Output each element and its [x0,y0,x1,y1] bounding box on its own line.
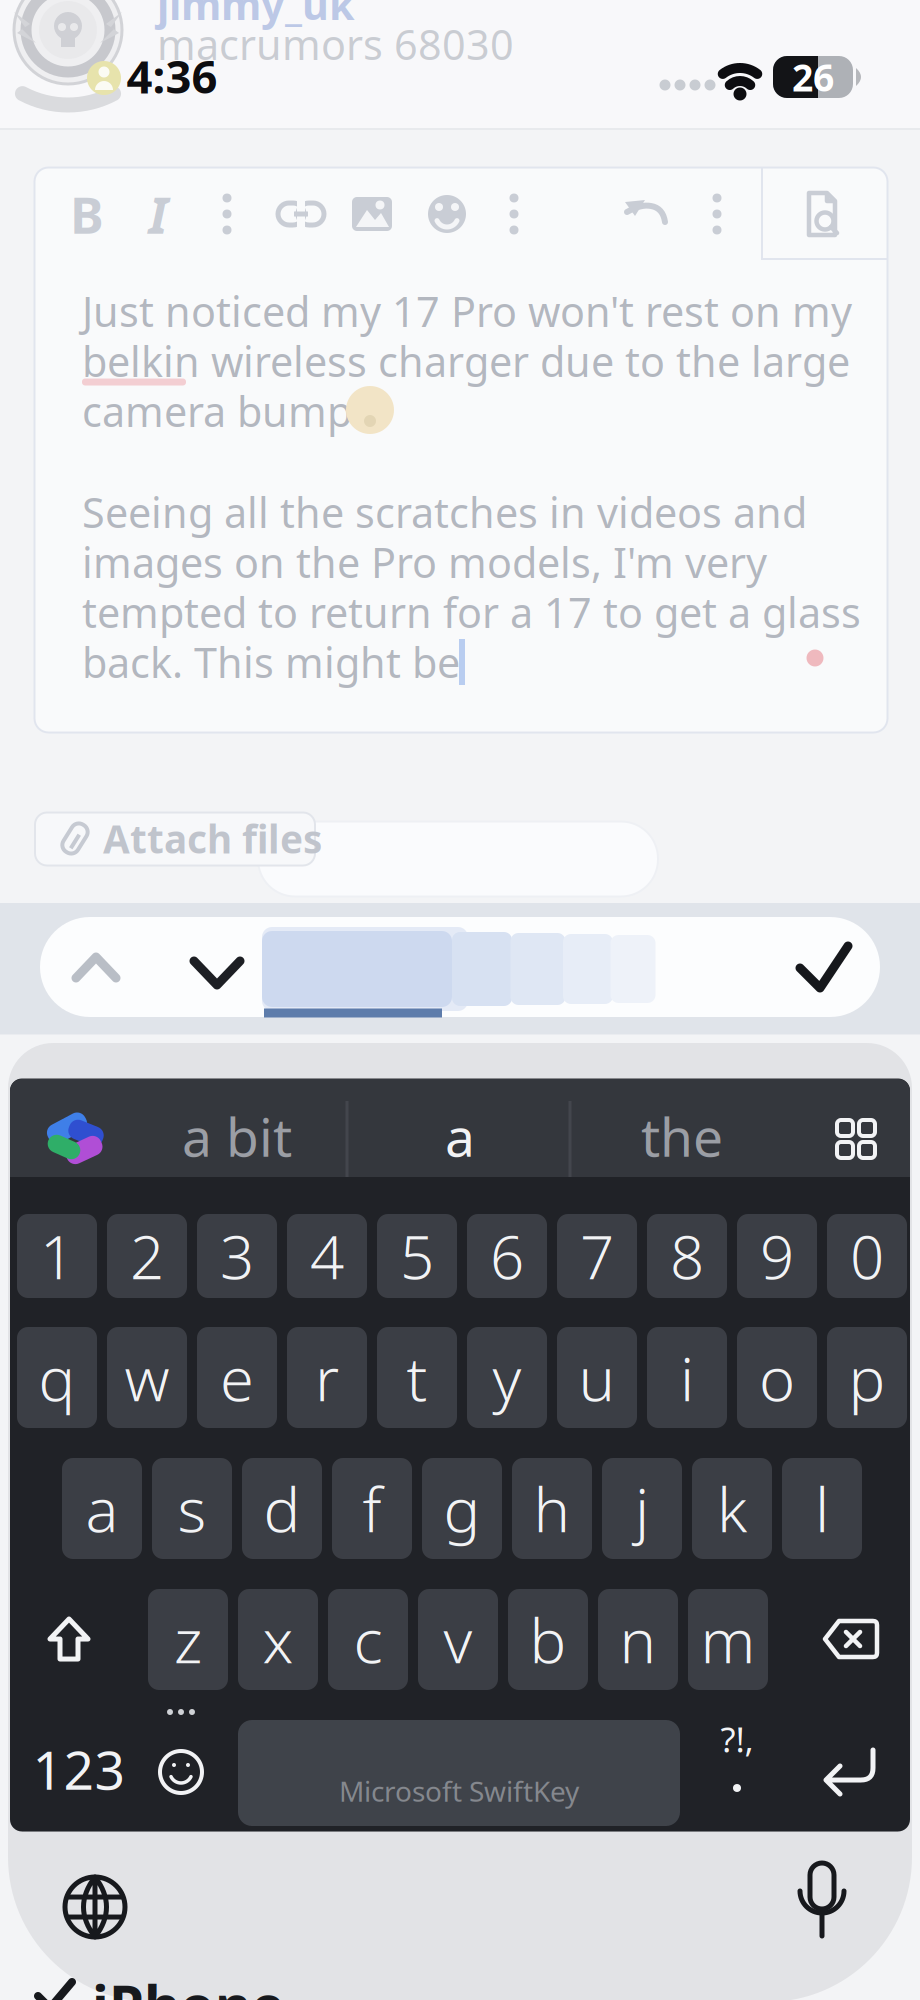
button[interactable]: 5 [377,1214,457,1298]
staticText: 4 [310,1216,344,1296]
staticText: 26 [792,52,834,102]
button[interactable]: 123 [14,1734,144,1804]
staticText: z [174,1599,202,1680]
staticText: B [70,180,104,248]
button[interactable]: More options [488,188,540,240]
button[interactable]: I [132,188,184,240]
button[interactable]: a [62,1458,142,1559]
staticText: r [315,1337,339,1418]
button[interactable]: n [598,1589,678,1690]
button[interactable]: Preview [794,186,850,242]
button[interactable]: e [197,1327,277,1428]
staticText: m [700,1599,755,1680]
button[interactable]: jimmy_uk [157,0,357,25]
staticText: a bit [182,1101,292,1171]
button[interactable]: c [328,1589,408,1690]
button[interactable]: Next keyboard [63,1875,127,1939]
staticText: t [406,1337,427,1418]
button[interactable]: Copilot [45,1109,105,1169]
button[interactable]: Previous field [73,954,119,982]
button[interactable]: Delete [823,1619,879,1659]
button[interactable]: v [418,1589,498,1690]
staticText: 9 [760,1216,794,1296]
staticText: n [619,1599,656,1680]
staticText: w [124,1337,169,1418]
button[interactable]: Undo [623,188,675,240]
button[interactable]: p [827,1327,907,1428]
staticText: e [220,1337,254,1418]
button[interactable]: 1 [17,1214,97,1298]
button[interactable]: B [61,188,113,240]
button[interactable]: Insert emoji [421,188,473,240]
button[interactable]: Space [238,1720,680,1826]
button[interactable]: iPhone keyboard [32,1962,312,2000]
button[interactable]: h [512,1458,592,1559]
staticText: u [578,1337,615,1418]
staticText: jimmy_uk [157,0,355,31]
button[interactable]: f [332,1458,412,1559]
button[interactable]: 7 [557,1214,637,1298]
button[interactable]: t [377,1327,457,1428]
button[interactable]: Attach files [35,812,315,865]
button[interactable]: i [647,1327,727,1428]
button[interactable]: o [737,1327,817,1428]
button[interactable]: x [238,1589,318,1690]
button[interactable]: Punctuation [712,1725,762,1801]
button[interactable]: 8 [647,1214,727,1298]
button[interactable]: 2 [107,1214,187,1298]
staticText: v [443,1599,472,1680]
staticText: b [529,1599,566,1680]
staticText: d [263,1468,300,1549]
button[interactable]: 0 [827,1214,907,1298]
button[interactable]: Emoji [151,1706,211,1802]
button[interactable]: j [602,1458,682,1559]
button[interactable]: u [557,1327,637,1428]
staticText: 123 [32,1734,125,1804]
staticText: 0 [850,1216,884,1296]
button[interactable]: Insert link [275,188,327,240]
staticText: l [815,1468,829,1549]
button[interactable]: Next field [191,957,243,989]
staticText: g [443,1468,480,1549]
button[interactable]: Done [797,943,851,991]
button[interactable]: y [467,1327,547,1428]
button[interactable]: r [287,1327,367,1428]
staticText: 1 [40,1216,74,1296]
button[interactable]: b [508,1589,588,1690]
button[interactable]: More formatting [201,188,253,240]
staticText: camera bump [82,384,352,438]
button[interactable]: s [152,1458,232,1559]
staticText: iPhone [92,1967,284,2000]
button[interactable]: Dictate [794,1865,850,1941]
button[interactable]: Expand toolbar [834,1117,878,1161]
button[interactable]: l [782,1458,862,1559]
button[interactable]: History options [691,188,743,240]
button[interactable]: z [148,1589,228,1690]
staticText: Seeing all the scratches in videos and [82,485,807,539]
staticText: I [148,180,167,248]
button[interactable]: a [445,1101,475,1171]
button[interactable]: 6 [467,1214,547,1298]
staticText: the [641,1101,723,1171]
button[interactable]: Return [826,1746,876,1800]
staticText: x [262,1599,293,1680]
button[interactable]: k [692,1458,772,1559]
button[interactable]: Insert image [346,188,398,240]
button[interactable]: m [688,1589,768,1690]
staticText: belkin wireless charger due to the large [82,334,850,388]
staticText: Just noticed my 17 Pro won't rest on my [82,284,852,338]
button[interactable]: g [422,1458,502,1559]
button[interactable]: 3 [197,1214,277,1298]
button[interactable]: a bit [182,1101,292,1171]
staticText: Microsoft SwiftKey [339,1772,579,1810]
button[interactable]: q [17,1327,97,1428]
button[interactable]: d [242,1458,322,1559]
button[interactable]: 4 [287,1214,367,1298]
button[interactable]: the [641,1101,723,1171]
button[interactable]: Autofill suggestion [258,924,658,1014]
staticText: c [353,1599,382,1680]
staticText: j [635,1468,649,1549]
button[interactable]: w [107,1327,187,1428]
button[interactable]: 9 [737,1214,817,1298]
button[interactable]: Shift [48,1617,90,1661]
